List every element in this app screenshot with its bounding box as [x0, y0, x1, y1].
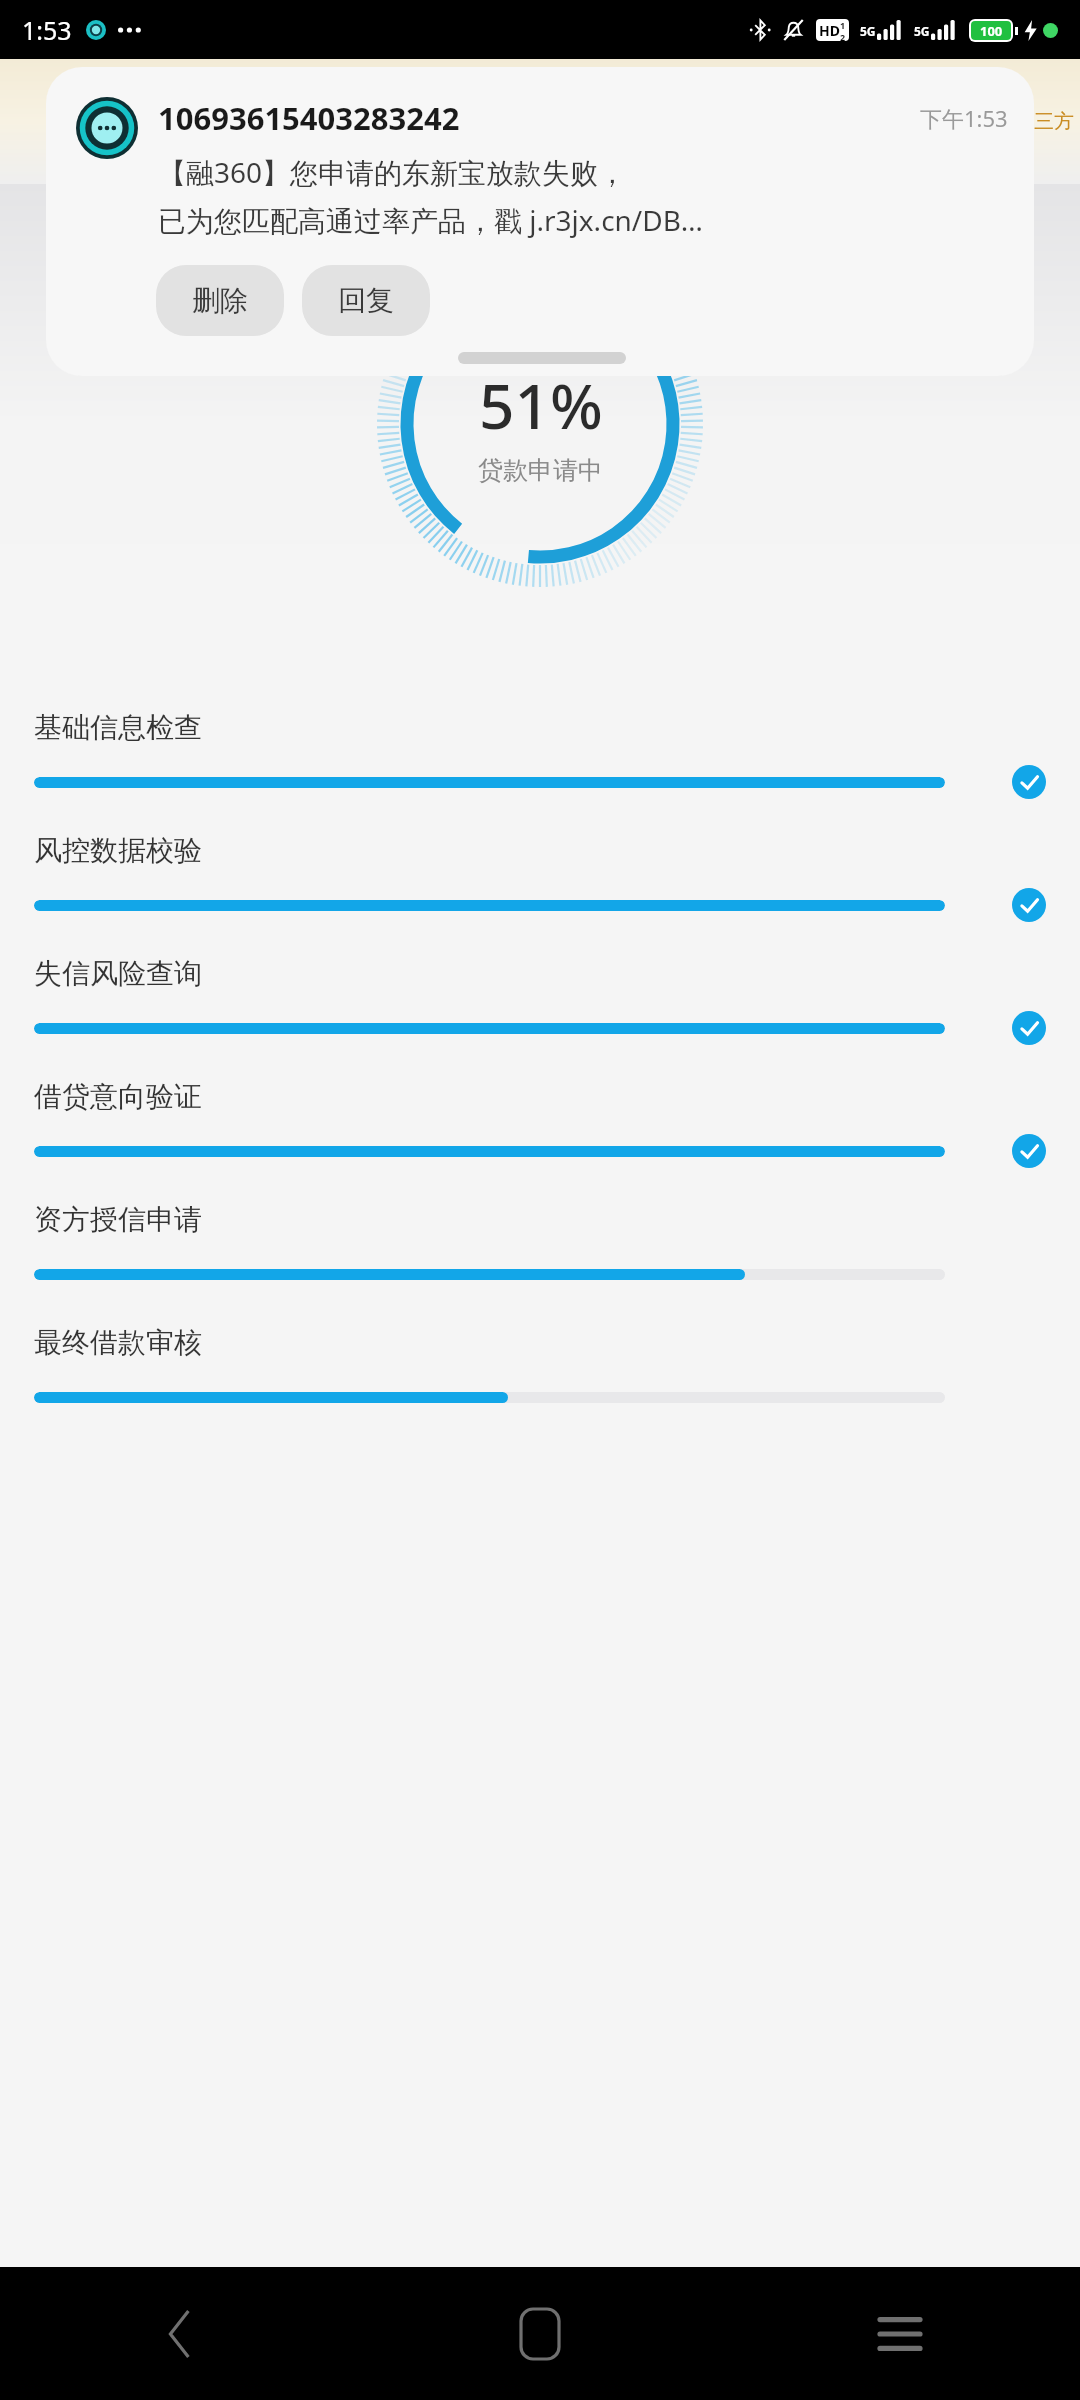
staticText: 资方授信申请 — [34, 1202, 202, 1237]
button[interactable]: 失信风险查询 — [34, 956, 1046, 1045]
staticText: 51% — [479, 363, 603, 447]
staticText: 贷款申请中 — [478, 455, 603, 486]
staticText: 100 — [980, 22, 1003, 40]
other: 已完成 — [1012, 1011, 1046, 1045]
button[interactable]: 菜单 — [720, 2267, 1080, 2400]
button[interactable]: 基础信息检查 — [34, 710, 1046, 799]
staticText: 1 — [840, 19, 846, 31]
button[interactable]: 资方授信申请 — [34, 1202, 1046, 1291]
staticText: 2 — [840, 31, 846, 41]
button[interactable]: 风控数据校验 — [34, 833, 1046, 922]
staticText: 5G — [860, 23, 876, 39]
staticText: 风控数据校验 — [34, 833, 202, 868]
button[interactable]: 10693615403283242 — [46, 67, 1034, 376]
other: 已完成 — [1012, 888, 1046, 922]
staticText: 已为您匹配高通过率产品，戳 j.r3jx.cn/DB… — [158, 201, 703, 239]
staticText: HD — [819, 21, 840, 40]
staticText: 回复 — [338, 283, 394, 318]
staticText: 最终借款审核 — [34, 1325, 202, 1360]
staticText: 【融360】您申请的东新宝放款失败， — [158, 153, 627, 191]
staticText: 借贷意向验证 — [34, 1079, 202, 1114]
staticText: 1:53 — [22, 13, 72, 47]
button[interactable]: 回复 — [302, 265, 430, 336]
other: 已完成 — [1012, 1134, 1046, 1168]
staticText: 失信风险查询 — [34, 956, 202, 991]
button[interactable]: 主页 — [360, 2267, 720, 2400]
staticText: 删除 — [192, 283, 248, 318]
button[interactable]: 返回 — [0, 2267, 360, 2400]
staticText: 三方 — [1034, 109, 1074, 134]
staticText: 10693615403283242 — [158, 97, 460, 139]
staticText: 5G — [914, 23, 930, 39]
staticText: 下午1:53 — [920, 103, 1008, 133]
staticText: 基础信息检查 — [34, 710, 202, 745]
button[interactable]: 删除 — [156, 265, 284, 336]
other: 已完成 — [1012, 765, 1046, 799]
button[interactable]: 借贷意向验证 — [34, 1079, 1046, 1168]
button[interactable]: 最终借款审核 — [34, 1325, 1046, 1414]
